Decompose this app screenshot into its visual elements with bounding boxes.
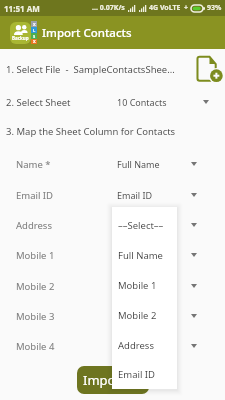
button[interactable]: Mobile 1: [112, 270, 177, 300]
staticText: L: [33, 28, 36, 33]
staticText: Name *: [16, 158, 51, 171]
staticText: 10 Contacts: [117, 96, 167, 108]
staticText: Import: [83, 371, 126, 389]
staticText: 2. Select Sheet: [6, 96, 71, 109]
staticText: Import Contacts: [42, 25, 132, 41]
button[interactable]: [117, 240, 199, 270]
button[interactable]: Email ID: [117, 180, 199, 210]
staticText: X: [33, 39, 36, 44]
staticText: Mobile 2: [118, 309, 157, 322]
button[interactable]: [117, 301, 199, 331]
staticText: S: [33, 34, 36, 39]
staticText: Full Name: [117, 158, 160, 170]
staticText: Mobile 2: [16, 280, 55, 293]
staticText: Mobile 1: [118, 279, 157, 292]
staticText: Email ID: [117, 189, 153, 201]
button[interactable]: [117, 331, 199, 361]
staticText: … 0.07K/s: [92, 3, 125, 13]
staticText: 93%: [207, 3, 222, 13]
button[interactable]: Select file: [196, 56, 223, 83]
staticText: ––Select––: [118, 219, 164, 232]
staticText: +: [184, 3, 189, 13]
staticText: Full Name: [118, 249, 163, 262]
staticText: 11:51 AM: [4, 3, 40, 14]
button[interactable]: ––Select––: [112, 210, 177, 240]
staticText: 4G VoLTE: [149, 3, 181, 13]
staticText: Email ID: [118, 368, 156, 381]
staticText: Mobile 4: [16, 340, 55, 353]
staticText: Email ID: [16, 189, 54, 202]
button[interactable]: [117, 210, 199, 240]
button[interactable]: Full Name: [112, 240, 177, 270]
staticText: Address: [118, 339, 154, 352]
staticText: Backup: [12, 35, 29, 41]
button[interactable]: Full Name: [117, 149, 199, 179]
button[interactable]: Import: [77, 366, 149, 394]
staticText: Mobile 1: [16, 249, 55, 262]
button[interactable]: Address: [112, 330, 177, 360]
staticText: 1. Select File - SampleContactsShee…: [6, 63, 175, 76]
staticText: Address: [16, 219, 52, 232]
staticText: Mobile 3: [16, 310, 55, 323]
staticText: 3. Map the Sheet Column for Contacts: [6, 125, 176, 138]
button[interactable]: Mobile 2: [112, 300, 177, 330]
button[interactable]: 10 Contacts: [117, 89, 212, 115]
staticText: X: [33, 22, 36, 27]
button[interactable]: Email ID: [112, 360, 177, 389]
button[interactable]: [117, 271, 199, 301]
